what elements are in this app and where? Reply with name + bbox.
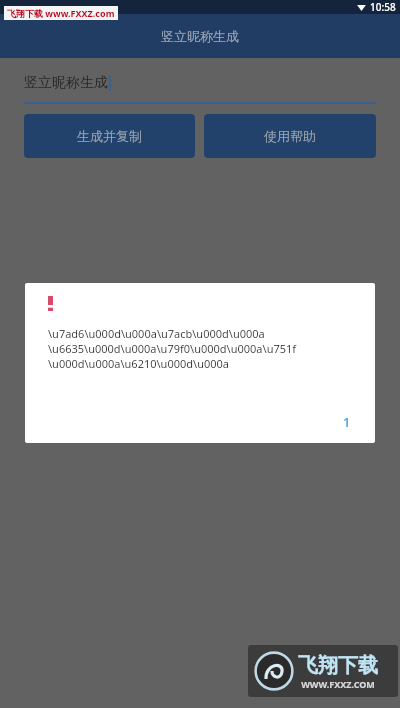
staticText: 竖立昵称生成 <box>161 28 239 44</box>
staticText: 生成并复制 <box>77 128 142 144</box>
button[interactable]: 竖立昵称生成 <box>24 70 376 96</box>
staticText: 飞翔下载 <box>298 653 378 678</box>
staticText: WWW.FXXZ.COM <box>301 678 375 690</box>
staticText: \u7ad6\u000d\u000a\u7acb\u000d\u000a <box>48 326 265 341</box>
staticText: \u6635\u000d\u000a\u79f0\u000d\u000a\u75… <box>48 341 297 356</box>
button[interactable]: 生成并复制 <box>24 114 195 158</box>
button[interactable]: 1 <box>331 407 363 437</box>
staticText: 竖立昵称生成 <box>24 74 108 92</box>
staticText: 10:58 <box>370 0 396 14</box>
staticText: \u000d\u000a\u6210\u000d\u000a <box>48 356 229 371</box>
button[interactable]: 使用帮助 <box>204 114 376 158</box>
staticText: 飞翔下载 www.FXXZ.com <box>7 7 115 19</box>
staticText: 1 <box>343 413 351 431</box>
other: Downloads <box>356 2 367 13</box>
staticText: 使用帮助 <box>264 128 316 144</box>
